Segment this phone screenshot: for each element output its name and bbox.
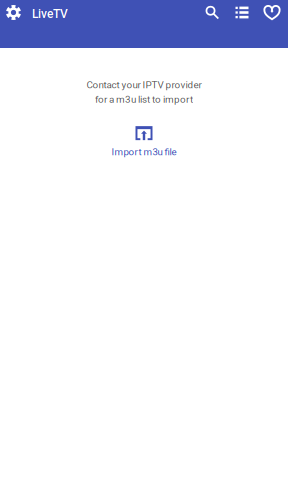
staticText: LiveTV xyxy=(32,7,68,21)
button[interactable]: Import m3u file xyxy=(0,105,288,157)
staticText: for a m3u list to import xyxy=(95,94,193,105)
staticText: Contact your IPTV provider xyxy=(86,79,201,91)
button[interactable]: Playlists xyxy=(227,0,257,25)
staticText: Import m3u file xyxy=(111,146,176,157)
button[interactable]: Favorites xyxy=(257,0,287,25)
button[interactable]: Search xyxy=(197,0,227,25)
button[interactable]: Settings xyxy=(0,0,27,25)
